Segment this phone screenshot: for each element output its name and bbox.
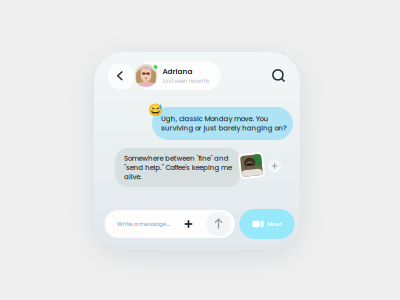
staticText: Adriana: [162, 66, 192, 76]
staticText: Meet: [267, 220, 282, 228]
staticText: Write a message...: [117, 220, 170, 228]
button[interactable]: Attach: [177, 213, 199, 235]
button[interactable]: Search: [267, 64, 291, 88]
staticText: 😅: [148, 103, 163, 116]
button[interactable]: Back: [107, 62, 136, 91]
button[interactable]: Send: [206, 211, 231, 236]
button[interactable]: Meet: [239, 209, 294, 239]
staticText: Somewhere between "fine" and "send help.…: [124, 153, 232, 182]
button[interactable]: Add reaction: [267, 159, 281, 173]
staticText: Ugh, classic Monday move. You surviving …: [161, 114, 287, 133]
staticText: Last seen recently: [162, 77, 209, 85]
